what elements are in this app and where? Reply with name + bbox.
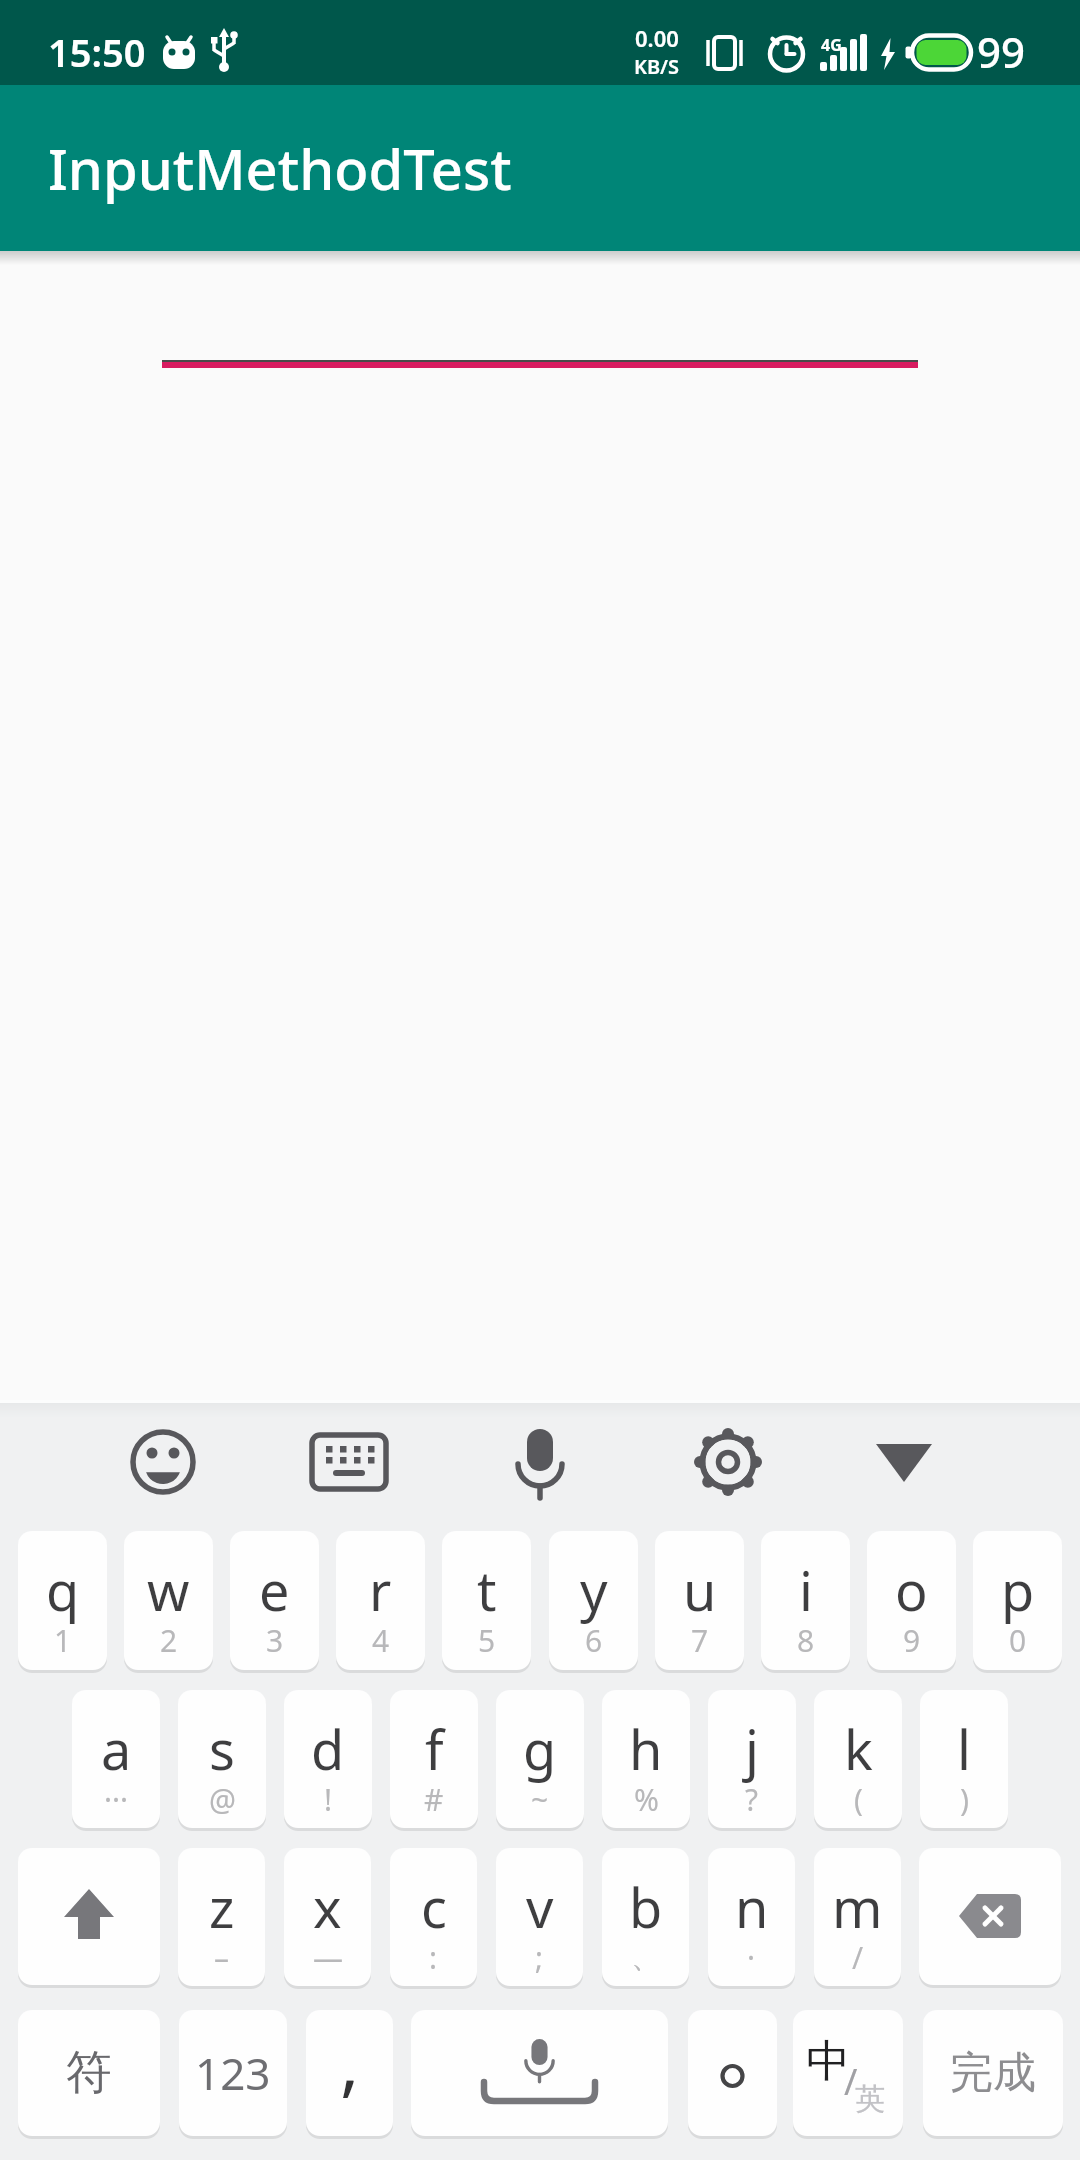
staticText: ( bbox=[854, 1779, 863, 1819]
button[interactable]: 完成 bbox=[923, 2010, 1063, 2136]
button[interactable] bbox=[856, 1414, 952, 1510]
staticText: ? bbox=[745, 1779, 759, 1819]
staticText: ) bbox=[960, 1779, 969, 1819]
button[interactable]: z bbox=[178, 1848, 265, 1986]
staticText: f bbox=[425, 1712, 444, 1786]
staticText: 15:50 bbox=[48, 26, 146, 78]
staticText: ~ bbox=[531, 1779, 549, 1819]
staticText: / bbox=[852, 1937, 864, 1977]
button[interactable]: l bbox=[920, 1690, 1008, 1828]
staticText: q bbox=[46, 1553, 80, 1627]
button[interactable] bbox=[301, 1414, 397, 1510]
button[interactable]: j bbox=[708, 1690, 796, 1828]
button[interactable]: u bbox=[655, 1531, 744, 1670]
staticText: p bbox=[1001, 1553, 1035, 1627]
staticText: 5 bbox=[478, 1620, 496, 1660]
staticText: 3 bbox=[266, 1620, 284, 1660]
staticText: d bbox=[311, 1712, 345, 1786]
staticText: ··· bbox=[104, 1779, 129, 1819]
staticText: / bbox=[844, 2057, 858, 2106]
staticText: 2 bbox=[160, 1620, 178, 1660]
staticText: n bbox=[735, 1870, 769, 1944]
button[interactable]: r bbox=[336, 1531, 425, 1670]
staticText: u bbox=[683, 1553, 717, 1627]
button[interactable]: h bbox=[602, 1690, 690, 1828]
button[interactable]: 中 bbox=[793, 2010, 903, 2136]
staticText: 完成 bbox=[950, 2046, 1036, 2100]
button[interactable]: i bbox=[761, 1531, 850, 1670]
button[interactable]: m bbox=[814, 1848, 901, 1986]
button[interactable]: d bbox=[284, 1690, 372, 1828]
button[interactable]: x bbox=[284, 1848, 371, 1986]
button[interactable]: s bbox=[178, 1690, 266, 1828]
staticText: 符 bbox=[66, 2044, 112, 2102]
staticText: x bbox=[313, 1870, 342, 1944]
button[interactable]: 符 bbox=[18, 2010, 160, 2136]
staticText: e bbox=[259, 1553, 290, 1627]
staticText: 英 bbox=[855, 2080, 885, 2118]
staticText: 4 bbox=[372, 1620, 390, 1660]
button[interactable]: 123 bbox=[179, 2010, 287, 2136]
staticText: 中 bbox=[806, 2034, 850, 2089]
staticText: t bbox=[477, 1553, 497, 1627]
staticText: % bbox=[634, 1779, 659, 1819]
staticText: 0 bbox=[1009, 1620, 1027, 1660]
button[interactable]: t bbox=[442, 1531, 531, 1670]
staticText: 99 bbox=[977, 23, 1026, 80]
staticText: b bbox=[629, 1870, 663, 1944]
staticText: a bbox=[101, 1712, 132, 1786]
staticText: 4G bbox=[821, 34, 842, 56]
staticText: y bbox=[580, 1553, 608, 1627]
button[interactable]: f bbox=[390, 1690, 478, 1828]
staticText: z bbox=[209, 1870, 235, 1944]
button[interactable]: q bbox=[18, 1531, 107, 1670]
staticText: c bbox=[421, 1870, 447, 1944]
staticText: 8 bbox=[797, 1620, 815, 1660]
staticText: g bbox=[523, 1712, 557, 1786]
button[interactable]: o bbox=[867, 1531, 956, 1670]
staticText: – bbox=[214, 1937, 229, 1977]
button[interactable]: g bbox=[496, 1690, 584, 1828]
staticText: j bbox=[745, 1712, 759, 1786]
button[interactable] bbox=[492, 1414, 588, 1510]
button[interactable] bbox=[18, 1848, 160, 1985]
button[interactable] bbox=[919, 1848, 1061, 1985]
button[interactable]: n bbox=[708, 1848, 795, 1986]
staticText: — bbox=[313, 1937, 343, 1977]
staticText: KB/S bbox=[634, 53, 680, 80]
button[interactable] bbox=[411, 2010, 668, 2136]
staticText: 0.00 bbox=[635, 23, 679, 53]
button[interactable]: a bbox=[72, 1690, 160, 1828]
button[interactable]: p bbox=[973, 1531, 1062, 1670]
button[interactable]: y bbox=[549, 1531, 638, 1670]
staticText: l bbox=[957, 1712, 971, 1786]
button[interactable]: k bbox=[814, 1690, 902, 1828]
button[interactable] bbox=[150, 295, 930, 371]
staticText: @ bbox=[209, 1779, 236, 1819]
staticText: s bbox=[209, 1712, 235, 1786]
staticText: i bbox=[799, 1553, 813, 1627]
button[interactable]: c bbox=[390, 1848, 477, 1986]
button[interactable]: v bbox=[496, 1848, 583, 1986]
button[interactable]: w bbox=[124, 1531, 213, 1670]
staticText: # bbox=[424, 1779, 444, 1819]
staticText: r bbox=[369, 1553, 392, 1627]
staticText: o bbox=[895, 1553, 928, 1627]
button[interactable] bbox=[680, 1414, 776, 1510]
staticText: 123 bbox=[195, 2043, 271, 2103]
staticText: m bbox=[832, 1870, 883, 1944]
staticText: ! bbox=[324, 1779, 333, 1819]
button[interactable]: b bbox=[602, 1848, 689, 1986]
button[interactable]: e bbox=[230, 1531, 319, 1670]
button[interactable] bbox=[688, 2010, 777, 2136]
staticText: , bbox=[340, 2012, 360, 2110]
staticText: w bbox=[147, 1553, 190, 1627]
button[interactable] bbox=[115, 1414, 211, 1510]
staticText: 、 bbox=[631, 1938, 661, 1976]
staticText: k bbox=[844, 1712, 873, 1786]
staticText: InputMethodTest bbox=[48, 130, 512, 206]
button[interactable]: , bbox=[306, 2010, 393, 2136]
staticText: 6 bbox=[585, 1620, 603, 1660]
staticText: · bbox=[747, 1937, 756, 1977]
staticText: 9 bbox=[903, 1620, 921, 1660]
